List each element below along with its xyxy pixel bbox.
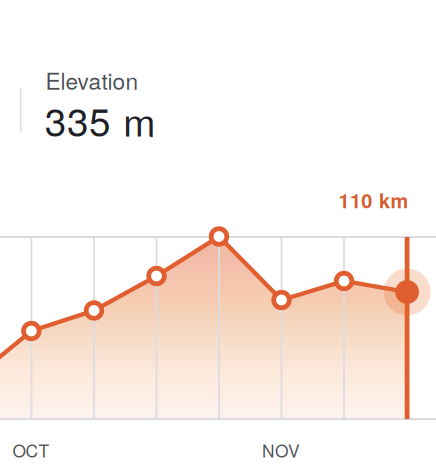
staticText: 335 m bbox=[45, 92, 155, 147]
staticText: NOV bbox=[262, 438, 300, 462]
staticText: Elevation bbox=[45, 64, 138, 96]
staticText: OCT bbox=[12, 438, 49, 462]
staticText: 110 km bbox=[338, 186, 408, 214]
